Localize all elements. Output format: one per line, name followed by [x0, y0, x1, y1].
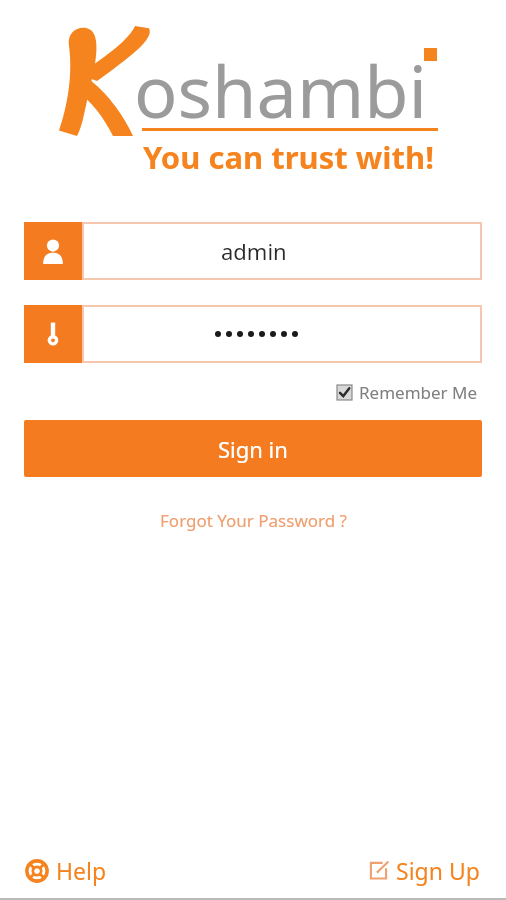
button[interactable]: Sign Up [365, 849, 484, 892]
staticText: Help [56, 855, 107, 886]
button[interactable]: Password field [24, 305, 482, 363]
staticText: Sign in [218, 434, 288, 464]
other: Sign Up [369, 861, 388, 880]
staticText: You can trust with! [143, 136, 434, 178]
button[interactable]: Forgot Your Password ? [148, 505, 359, 536]
staticText: admin [221, 236, 287, 266]
other: Help [26, 860, 48, 882]
button[interactable]: Sign in [24, 420, 482, 477]
staticText: Remember Me [359, 381, 478, 404]
staticText: Sign Up [396, 855, 480, 886]
button[interactable]: Username field [24, 222, 482, 280]
staticText: oshambi [134, 41, 428, 139]
button[interactable]: Remember Me [333, 377, 482, 408]
staticText: Forgot Your Password ? [160, 509, 347, 532]
button[interactable]: Help [22, 849, 111, 892]
